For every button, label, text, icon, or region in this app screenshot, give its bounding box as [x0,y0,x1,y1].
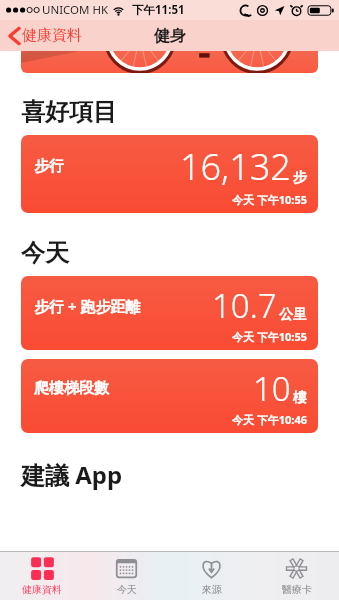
staticText: 步 [293,169,307,187]
staticText: 今天 下午10:55 [34,192,307,207]
staticText: UNICOM HK [42,2,109,18]
staticText: 今天 [21,238,69,268]
button[interactable] [21,51,318,73]
staticText: 今天 下午10:55 [34,329,307,344]
staticText: 樓 [293,389,307,407]
staticText: 下午11:51 [132,2,185,18]
button[interactable]: 來源 [169,552,254,600]
button[interactable]: 爬樓梯段數 [21,359,318,433]
button[interactable]: 步行 + 跑步距離 [21,276,318,350]
button[interactable]: 今天 [84,552,169,600]
staticText: 喜好項目 [21,97,117,127]
staticText: 醫療卡 [282,583,312,596]
staticText: 今天 下午10:46 [34,412,307,427]
staticText: 10.7 [212,283,277,328]
staticText: 10 [253,366,291,411]
button[interactable]: 步行 [21,135,318,213]
button[interactable]: 健康資料 [7,24,84,47]
staticText: 來源 [202,583,222,596]
staticText: 爬樓梯段數 [34,379,109,398]
staticText: 步行 [34,157,64,176]
staticText: 16,132 [180,142,291,191]
staticText: 健康資料 [22,583,62,596]
staticText: 步行 + 跑步距離 [34,296,141,316]
staticText: 今天 [117,583,137,596]
staticText: 公里 [279,306,307,324]
button[interactable]: 健康資料 [0,552,84,600]
staticText: 建議 App [21,458,123,491]
staticText: 健身 [154,26,186,46]
staticText: 健康資料 [22,26,82,45]
button[interactable]: 醫療卡 [254,552,339,600]
